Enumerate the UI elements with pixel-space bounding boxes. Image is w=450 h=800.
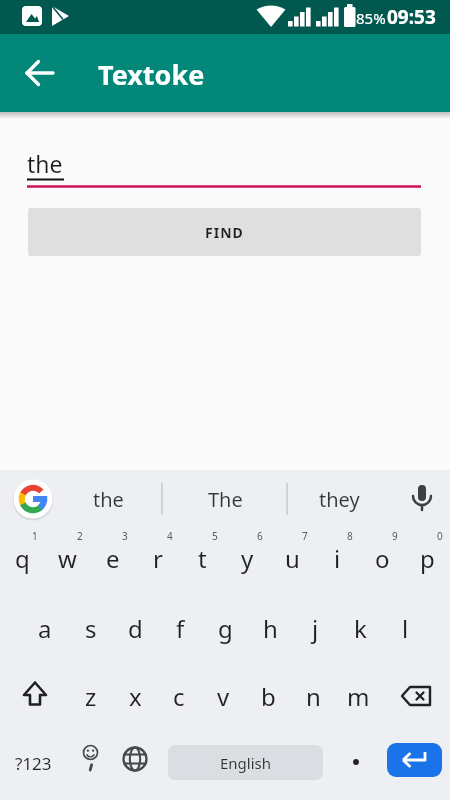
staticText: p	[420, 542, 435, 575]
staticText: Textoke	[98, 56, 205, 93]
staticText: l	[402, 612, 409, 645]
staticText: the	[27, 148, 63, 179]
staticText: a	[38, 612, 52, 645]
staticText: u	[285, 542, 300, 575]
button[interactable]: 6	[225, 528, 270, 596]
staticText: d	[128, 612, 143, 645]
staticText: r	[153, 542, 163, 575]
button[interactable]: c	[157, 664, 201, 732]
staticText: The	[208, 486, 243, 513]
staticText: i	[334, 542, 341, 575]
staticText: 0	[437, 529, 443, 543]
staticText: h	[263, 612, 278, 645]
button[interactable]: j	[293, 596, 338, 664]
button[interactable]: 5	[180, 528, 225, 596]
button[interactable]: 2	[45, 528, 90, 596]
staticText: 1	[32, 529, 38, 543]
staticText: w	[58, 542, 77, 575]
staticText: 8	[347, 529, 353, 543]
button[interactable]: n	[291, 664, 336, 732]
button[interactable]	[387, 743, 442, 777]
staticText: z	[85, 680, 97, 713]
staticText: v	[217, 680, 230, 713]
staticText: English	[220, 753, 272, 773]
staticText: k	[354, 612, 367, 645]
button[interactable]	[334, 732, 382, 800]
button[interactable]: z	[69, 664, 113, 732]
button[interactable]: 9	[360, 528, 405, 596]
button[interactable]: a	[22, 596, 68, 664]
button[interactable]: ?123	[0, 732, 67, 800]
button[interactable]: l	[383, 596, 428, 664]
staticText: 6	[257, 529, 263, 543]
button[interactable]	[14, 48, 64, 98]
staticText: q	[15, 542, 30, 575]
staticText: e	[106, 542, 120, 575]
staticText: t	[198, 542, 207, 575]
button[interactable]: d	[113, 596, 158, 664]
button[interactable]: 0	[405, 528, 450, 596]
button[interactable]: The	[169, 470, 281, 528]
staticText: 85%	[356, 8, 386, 28]
button[interactable]: 3	[90, 528, 135, 596]
button[interactable]: 1	[0, 528, 45, 596]
staticText: 4	[167, 529, 173, 543]
staticText: the	[93, 486, 124, 513]
button[interactable]: FIND	[28, 208, 421, 256]
button[interactable]: 8	[315, 528, 360, 596]
button[interactable]: s	[68, 596, 113, 664]
button[interactable]	[67, 732, 112, 800]
button[interactable]	[13, 479, 53, 519]
staticText: 2	[77, 529, 83, 543]
button[interactable]	[402, 479, 442, 519]
button[interactable]: k	[338, 596, 383, 664]
button[interactable]: b	[246, 664, 291, 732]
button[interactable]: the	[0, 142, 450, 192]
staticText: j	[312, 612, 319, 645]
button[interactable]	[381, 664, 450, 732]
staticText: FIND	[205, 223, 244, 242]
staticText: s	[85, 612, 97, 645]
button[interactable]: m	[336, 664, 381, 732]
staticText: o	[375, 542, 390, 575]
staticText: b	[261, 680, 276, 713]
staticText: f	[176, 612, 185, 645]
staticText: 9	[392, 529, 398, 543]
button[interactable]	[0, 664, 69, 732]
button[interactable]: 7	[270, 528, 315, 596]
staticText: g	[218, 612, 233, 645]
button[interactable]: 4	[135, 528, 180, 596]
staticText: m	[347, 680, 370, 713]
staticText: n	[306, 680, 321, 713]
staticText: c	[173, 680, 185, 713]
staticText: 3	[122, 529, 128, 543]
button[interactable]: English	[168, 745, 323, 780]
staticText: x	[129, 680, 142, 713]
staticText: 7	[302, 529, 308, 543]
button[interactable]: h	[248, 596, 293, 664]
button[interactable]: g	[203, 596, 248, 664]
staticText: ?123	[15, 752, 52, 775]
button[interactable]: v	[201, 664, 246, 732]
button[interactable]: x	[113, 664, 157, 732]
button[interactable]	[112, 732, 157, 800]
staticText: 09:53	[387, 4, 436, 30]
button[interactable]: the	[60, 470, 156, 528]
staticText: 5	[212, 529, 218, 543]
staticText: y	[241, 542, 254, 575]
button[interactable]: f	[158, 596, 203, 664]
staticText: they	[319, 486, 360, 513]
button[interactable]: they	[294, 470, 384, 528]
